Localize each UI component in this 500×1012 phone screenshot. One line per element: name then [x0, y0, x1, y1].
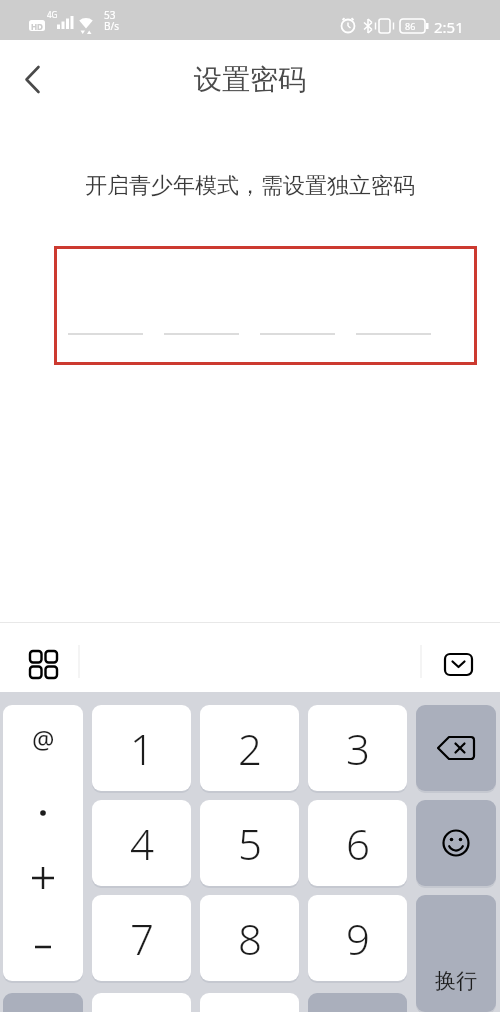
- button[interactable]: [308, 993, 407, 1012]
- staticText: 9: [346, 910, 370, 967]
- button[interactable]: [3, 858, 83, 898]
- button[interactable]: 1: [92, 705, 191, 791]
- button[interactable]: [416, 705, 496, 791]
- staticText: 4G: [47, 9, 58, 20]
- button[interactable]: [3, 793, 83, 833]
- button[interactable]: [3, 927, 83, 967]
- button[interactable]: 5: [200, 800, 299, 886]
- button[interactable]: 换行: [416, 895, 496, 1012]
- staticText: 8: [238, 910, 262, 967]
- staticText: 2: [238, 720, 262, 777]
- button[interactable]: [416, 800, 496, 886]
- staticText: B/s: [104, 19, 120, 33]
- button[interactable]: [433, 642, 483, 686]
- staticText: 6: [346, 815, 370, 872]
- staticText: 5: [238, 815, 262, 872]
- button[interactable]: [8, 55, 56, 103]
- staticText: 开启青少年模式，需设置独立密码: [85, 172, 415, 200]
- button[interactable]: [200, 993, 299, 1012]
- button[interactable]: [3, 993, 83, 1012]
- button[interactable]: 7: [92, 895, 191, 981]
- button[interactable]: 9: [308, 895, 407, 981]
- button[interactable]: 6: [308, 800, 407, 886]
- staticText: 4: [130, 815, 154, 872]
- staticText: 2:51: [434, 17, 464, 37]
- staticText: 53: [104, 8, 116, 22]
- button[interactable]: [54, 246, 477, 365]
- button[interactable]: [92, 993, 191, 1012]
- staticText: 86: [405, 20, 416, 32]
- button[interactable]: 8: [200, 895, 299, 981]
- staticText: @: [32, 722, 55, 756]
- button[interactable]: [16, 641, 70, 687]
- staticText: 设置密码: [194, 62, 306, 97]
- button[interactable]: 2: [200, 705, 299, 791]
- button[interactable]: 4: [92, 800, 191, 886]
- button[interactable]: @: [3, 719, 83, 759]
- button[interactable]: 3: [308, 705, 407, 791]
- staticText: 换行: [435, 968, 477, 994]
- staticText: HD: [31, 21, 43, 32]
- staticText: 1: [130, 720, 154, 777]
- staticText: 7: [130, 910, 154, 967]
- staticText: 3: [346, 720, 370, 777]
